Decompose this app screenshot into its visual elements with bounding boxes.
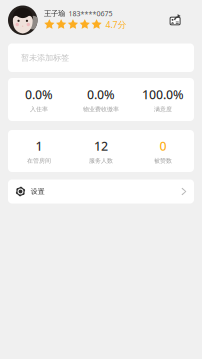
staticText: 0	[159, 137, 166, 154]
staticText: 满意度	[154, 105, 172, 113]
staticText: 王子瑜	[44, 9, 65, 18]
staticText: 物业费收缴率	[83, 105, 119, 113]
staticText: 入住率	[30, 105, 48, 113]
staticText: 设置	[31, 187, 45, 196]
staticText: 1	[35, 137, 42, 154]
staticText: 暂未添加标签	[21, 52, 69, 63]
staticText: 服务人数	[89, 157, 113, 164]
button[interactable]: 分享名片	[168, 12, 183, 27]
staticText: 被赞数	[154, 157, 172, 164]
staticText: 183****0675	[68, 9, 112, 18]
staticText: 在管房间	[27, 157, 51, 164]
button[interactable]: 设置	[8, 179, 194, 203]
staticText: 4.7分	[105, 18, 126, 30]
staticText: 0.0%	[87, 86, 115, 103]
staticText: 0.0%	[25, 86, 53, 103]
staticText: 100.0%	[142, 86, 184, 103]
staticText: 12	[94, 137, 108, 154]
